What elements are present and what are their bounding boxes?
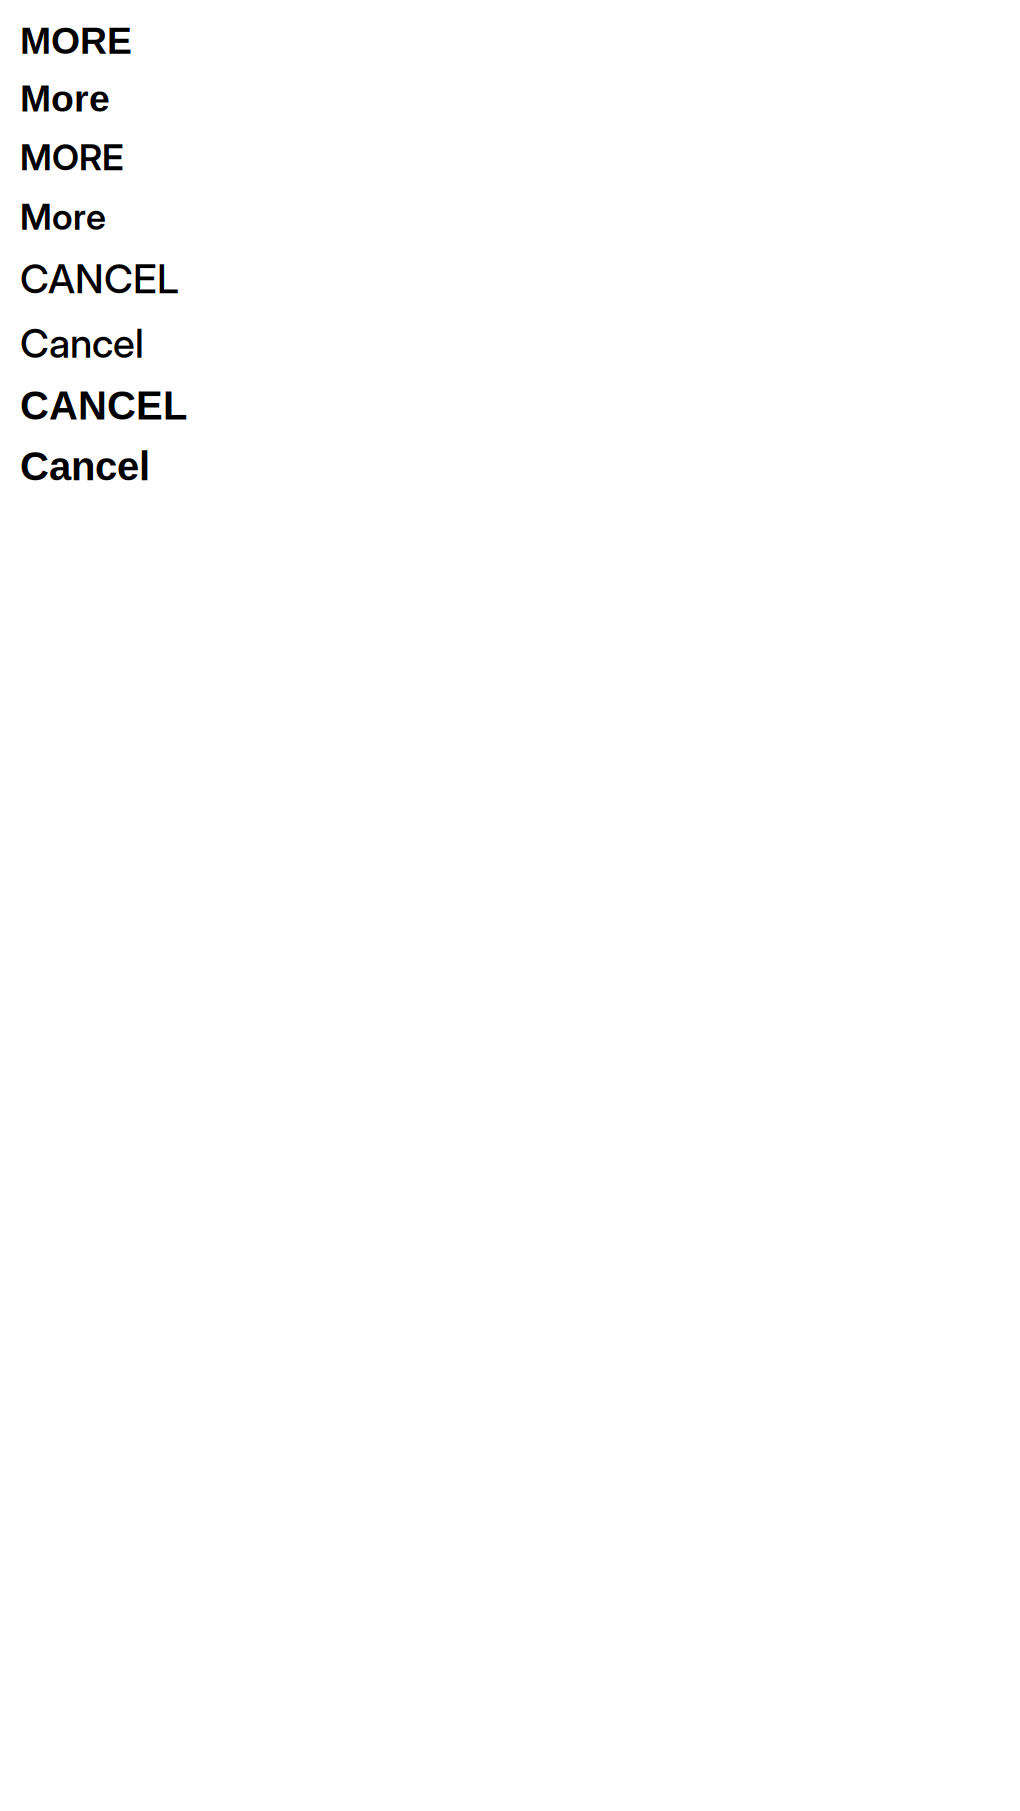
staticText: Cancel — [20, 319, 144, 367]
staticText: MORE — [20, 135, 124, 179]
staticText: CANCEL — [20, 383, 187, 428]
staticText: MORE — [20, 20, 132, 62]
staticText: More — [20, 195, 106, 239]
staticText: Cancel — [20, 444, 150, 489]
staticText: More — [20, 78, 110, 119]
staticText: CANCEL — [20, 254, 179, 303]
